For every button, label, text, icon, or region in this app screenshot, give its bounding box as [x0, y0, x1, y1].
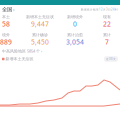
staticText: 累计治愈: [67, 32, 83, 37]
staticText: 新增本土无症状: [26, 14, 54, 19]
staticText: 7: [105, 38, 109, 46]
staticText: 全国: [2, 6, 12, 13]
staticText: 累计: [103, 32, 111, 37]
staticText: 新增本土无症状: [4, 56, 33, 61]
staticText: 22: [103, 20, 111, 28]
staticText: 0: [73, 20, 77, 28]
staticText: 新增境外: [67, 14, 83, 19]
button[interactable]: 中高风险地区 5854 个 ›: [0, 47, 120, 55]
staticText: 现有: [103, 14, 111, 19]
staticText: ›: [12, 6, 15, 13]
staticText: 近30天: [106, 57, 116, 61]
button[interactable]: 近30天: [104, 56, 118, 62]
staticText: 境外: [2, 32, 10, 37]
staticText: 889: [0, 38, 12, 46]
button[interactable]: 全国: [0, 5, 120, 14]
staticText: 累计确诊: [32, 32, 48, 37]
staticText: 3,054: [66, 38, 84, 46]
staticText: 58: [2, 20, 10, 28]
staticText: 数据统计截至12月3日24时: [81, 8, 118, 11]
staticText: 本土: [2, 14, 10, 19]
staticText: 5,450: [31, 38, 49, 46]
staticText: 9,447: [31, 20, 49, 28]
staticText: 中高风险地区 5854 个 ›: [2, 48, 42, 54]
